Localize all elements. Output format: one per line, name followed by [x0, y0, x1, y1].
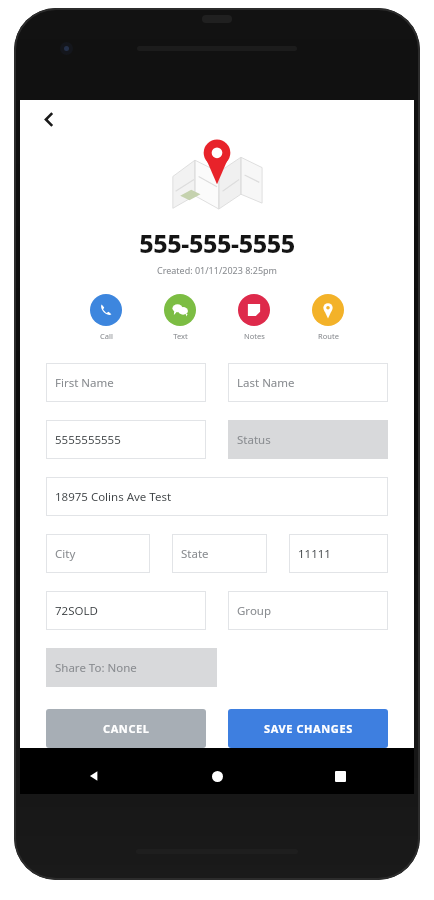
staticText: 18975 Colins Ave Test [55, 489, 172, 505]
button[interactable]: Recent apps [326, 762, 354, 790]
staticText: Status [237, 432, 271, 448]
button[interactable]: Back [80, 762, 108, 790]
button[interactable]: Share To: None [46, 648, 217, 687]
staticText: Share To: None [55, 660, 137, 676]
staticText: Last Name [237, 375, 295, 391]
staticText: 555-555-5555 [20, 226, 414, 260]
staticText: 5555555555 [55, 432, 121, 448]
staticText: State [181, 546, 209, 562]
button[interactable]: Route [301, 294, 355, 341]
staticText: Created: 01/11/2023 8:25pm [20, 264, 414, 276]
button[interactable]: 11111 [289, 534, 388, 573]
staticText: Group [237, 603, 272, 619]
button[interactable]: City [46, 534, 150, 573]
button[interactable]: State [172, 534, 267, 573]
staticText: Text [173, 331, 188, 341]
staticText: SAVE CHANGES [264, 721, 353, 736]
button[interactable]: First Name [46, 363, 206, 402]
staticText: First Name [55, 375, 114, 391]
button[interactable]: 18975 Colins Ave Test [46, 477, 388, 516]
button[interactable]: Text [153, 294, 207, 341]
staticText: 11111 [298, 546, 331, 562]
button[interactable]: Last Name [228, 363, 388, 402]
button[interactable]: Group [228, 591, 388, 630]
button[interactable]: Back [32, 102, 66, 136]
button[interactable]: Home [203, 762, 231, 790]
staticText: Notes [244, 331, 265, 341]
staticText: 72SOLD [55, 603, 98, 619]
button[interactable]: 72SOLD [46, 591, 206, 630]
button[interactable]: 5555555555 [46, 420, 206, 459]
button[interactable]: Call [79, 294, 133, 341]
button[interactable]: SAVE CHANGES [228, 709, 388, 748]
staticText: Call [100, 331, 113, 341]
staticText: Route [318, 331, 339, 341]
staticText: CANCEL [103, 721, 150, 736]
staticText: City [55, 546, 76, 562]
button[interactable]: CANCEL [46, 709, 206, 748]
button[interactable]: Status [228, 420, 388, 459]
button[interactable]: Notes [227, 294, 281, 341]
